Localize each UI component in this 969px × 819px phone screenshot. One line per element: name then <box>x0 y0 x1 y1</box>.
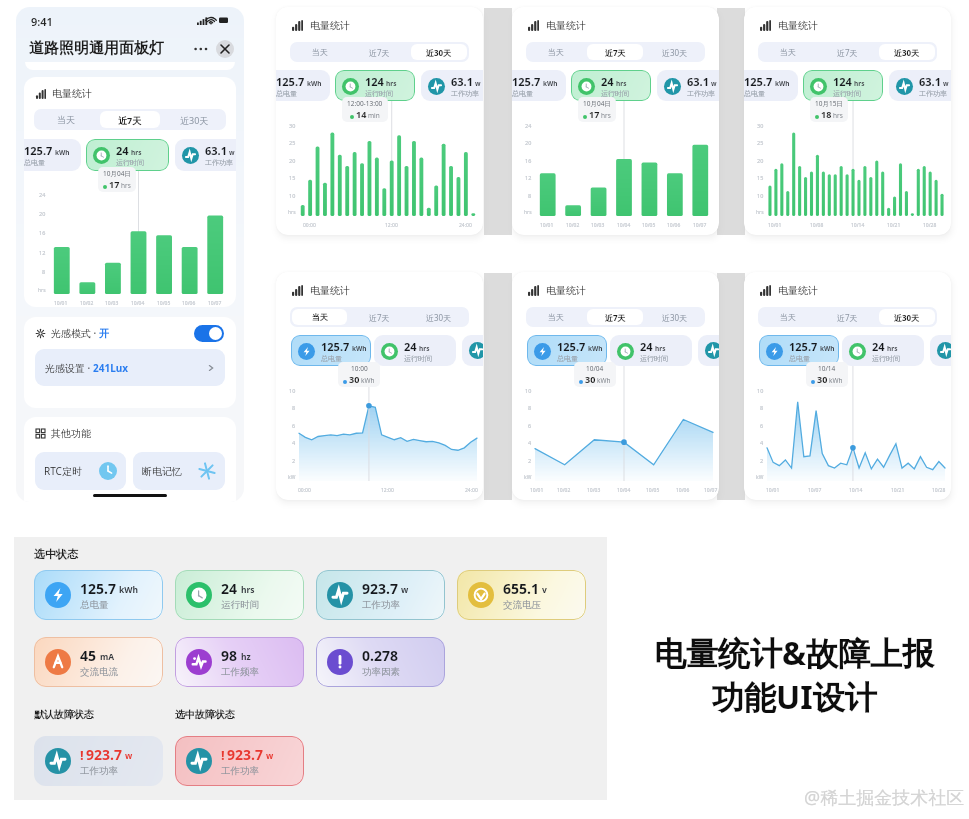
button[interactable] <box>930 335 951 366</box>
button[interactable]: 63.1 <box>421 70 483 101</box>
button[interactable]: ! <box>34 736 163 786</box>
button[interactable]: 124 <box>335 70 415 101</box>
button[interactable]: 24 <box>610 335 692 366</box>
staticText: hrs <box>756 209 764 216</box>
button[interactable]: More <box>192 40 210 58</box>
button[interactable]: 125.7 <box>527 335 607 366</box>
staticText: 总电量 <box>24 158 45 167</box>
button[interactable]: 45 <box>34 637 163 687</box>
button[interactable]: 近7天 <box>351 44 407 60</box>
button[interactable]: 24 <box>86 139 169 171</box>
button[interactable]: 63.1 <box>657 70 719 101</box>
button[interactable]: 当天 <box>528 44 583 60</box>
button[interactable]: 当天 <box>760 44 815 60</box>
button[interactable]: 125.7 <box>24 139 81 171</box>
staticText: 10/21 <box>887 222 901 229</box>
staticText: 断电记忆 <box>142 465 182 478</box>
staticText: 63.1 <box>451 74 473 89</box>
button[interactable]: 125.7 <box>276 70 330 101</box>
staticText: 24 <box>39 191 46 198</box>
staticText: 10 <box>289 192 296 199</box>
button[interactable]: 125.7 <box>759 335 839 366</box>
staticText: 总电量 <box>512 89 533 98</box>
staticText: 10/02 <box>80 300 94 307</box>
button[interactable]: 124 <box>803 70 883 101</box>
staticText: 交流电流 <box>80 666 118 678</box>
button[interactable]: 近30天 <box>647 309 703 325</box>
button[interactable]: 24 <box>374 335 456 366</box>
staticText: kWh <box>597 376 611 385</box>
button[interactable]: 当天 <box>36 111 96 128</box>
button[interactable]: RTC定时 <box>35 452 126 490</box>
button[interactable]: 近7天 <box>100 111 160 128</box>
button[interactable]: 24 <box>571 70 651 101</box>
button[interactable]: 近7天 <box>587 44 643 60</box>
staticText: 8 <box>528 192 532 199</box>
button[interactable]: Close <box>216 40 234 58</box>
staticText: 125.7 <box>557 339 586 354</box>
staticText: 2 <box>292 457 296 464</box>
button[interactable]: 125.7 <box>291 335 371 366</box>
button[interactable]: 近30天 <box>647 44 703 60</box>
button[interactable]: 断电记忆 <box>133 452 225 490</box>
staticText: 24 <box>601 74 614 89</box>
staticText: 选中故障状态 <box>175 708 235 721</box>
staticText: 20 <box>39 210 46 217</box>
staticText: 近30天 <box>180 114 209 126</box>
button[interactable]: ! <box>175 736 304 786</box>
staticText: 运行时间 <box>872 354 900 363</box>
staticText: w <box>125 750 133 762</box>
staticText: hrs <box>887 344 898 353</box>
button[interactable]: 近7天 <box>587 309 643 325</box>
staticText: 12 <box>39 249 46 256</box>
staticText: hrs <box>131 148 142 157</box>
button[interactable]: 24 <box>842 335 924 366</box>
button[interactable]: 125.7 <box>34 570 163 620</box>
staticText: hrs <box>833 111 843 120</box>
staticText: 当天 <box>312 47 328 57</box>
button[interactable]: 近30天 <box>411 44 467 60</box>
button[interactable]: 125.7 <box>744 70 798 101</box>
button[interactable]: 63.1 <box>175 139 236 171</box>
button[interactable]: 近30天 <box>879 44 935 60</box>
button[interactable]: 923.7 <box>316 570 445 620</box>
button[interactable]: 0.278 <box>316 637 445 687</box>
staticText: 近7天 <box>605 47 626 58</box>
staticText: 15 <box>757 174 764 181</box>
staticText: 10/07 <box>208 300 222 307</box>
staticText: 10月04日 <box>103 169 131 178</box>
staticText: 10/01 <box>768 222 782 229</box>
staticText: 125.7 <box>276 74 305 89</box>
button[interactable]: 125.7 <box>512 70 566 101</box>
staticText: 10 <box>289 387 296 394</box>
button[interactable] <box>462 335 483 366</box>
staticText: kWh <box>55 148 70 157</box>
staticText: 当天 <box>548 312 564 322</box>
staticText: 近7天 <box>118 114 142 126</box>
staticText: 道路照明通用面板灯 <box>29 39 164 58</box>
staticText: 10/05 <box>646 487 660 494</box>
button[interactable] <box>698 335 719 366</box>
staticText: hrs <box>38 287 46 294</box>
button[interactable]: 24 <box>175 570 304 620</box>
button[interactable]: 655.1 <box>457 570 586 620</box>
button[interactable]: 近7天 <box>351 309 407 325</box>
button[interactable]: 当天 <box>292 309 347 325</box>
button[interactable]: 近30天 <box>164 111 224 128</box>
button[interactable]: 当天 <box>528 309 583 325</box>
staticText: 00:00 <box>303 222 316 229</box>
button[interactable]: 当天 <box>760 309 815 325</box>
button[interactable]: 近7天 <box>819 309 875 325</box>
button[interactable]: 近30天 <box>879 309 935 325</box>
button[interactable]: 63.1 <box>889 70 951 101</box>
button[interactable]: 98 <box>175 637 304 687</box>
button[interactable]: 近7天 <box>819 44 875 60</box>
button[interactable]: 当天 <box>292 44 347 60</box>
staticText: 10/02 <box>557 487 571 494</box>
staticText: 63.1 <box>205 143 227 158</box>
button[interactable]: 光感设置 · <box>35 349 225 386</box>
button[interactable]: Light sensing toggle <box>194 325 224 342</box>
staticText: kW <box>756 474 764 481</box>
button[interactable]: 近30天 <box>411 309 467 325</box>
staticText: 125.7 <box>512 74 541 89</box>
